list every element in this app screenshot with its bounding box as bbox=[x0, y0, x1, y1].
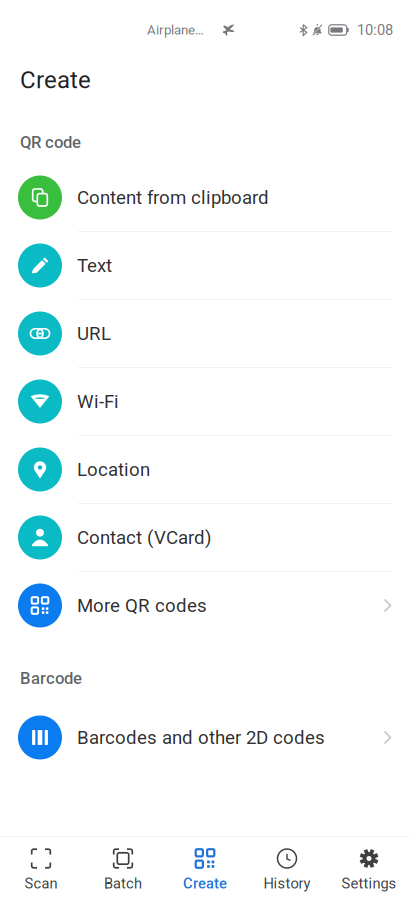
button[interactable]: More QR codes bbox=[0, 572, 410, 640]
button[interactable]: Text bbox=[0, 232, 410, 300]
staticText: Barcodes and other 2D codes bbox=[77, 727, 325, 748]
staticText: Settings bbox=[341, 875, 396, 892]
staticText: Text bbox=[77, 255, 112, 276]
staticText: Batch bbox=[104, 875, 142, 892]
button[interactable]: Contact (VCard) bbox=[0, 504, 410, 572]
button[interactable]: URL bbox=[0, 300, 410, 368]
button[interactable]: Batch bbox=[82, 837, 164, 900]
button[interactable]: Wi-Fi bbox=[0, 368, 410, 436]
staticText: URL bbox=[77, 323, 111, 344]
button[interactable]: Scan bbox=[0, 837, 82, 900]
button[interactable]: Location bbox=[0, 436, 410, 504]
staticText: 10:08 bbox=[357, 21, 393, 39]
button[interactable]: Settings bbox=[328, 837, 410, 900]
staticText: History bbox=[263, 875, 310, 892]
staticText: Barcode bbox=[20, 668, 82, 688]
button[interactable]: Create bbox=[164, 837, 246, 900]
staticText: Contact (VCard) bbox=[77, 527, 211, 548]
staticText: Content from clipboard bbox=[77, 187, 269, 208]
button[interactable]: History bbox=[246, 837, 328, 900]
staticText: Create bbox=[20, 66, 91, 94]
button[interactable]: Content from clipboard bbox=[0, 164, 410, 232]
staticText: More QR codes bbox=[77, 595, 207, 616]
staticText: Airplane… bbox=[147, 22, 204, 38]
staticText: Create bbox=[183, 875, 227, 892]
staticText: Wi-Fi bbox=[77, 391, 119, 412]
button[interactable]: Barcodes and other 2D codes bbox=[0, 704, 410, 772]
staticText: Location bbox=[77, 459, 150, 480]
staticText: QR code bbox=[20, 132, 81, 152]
staticText: Scan bbox=[24, 875, 57, 892]
